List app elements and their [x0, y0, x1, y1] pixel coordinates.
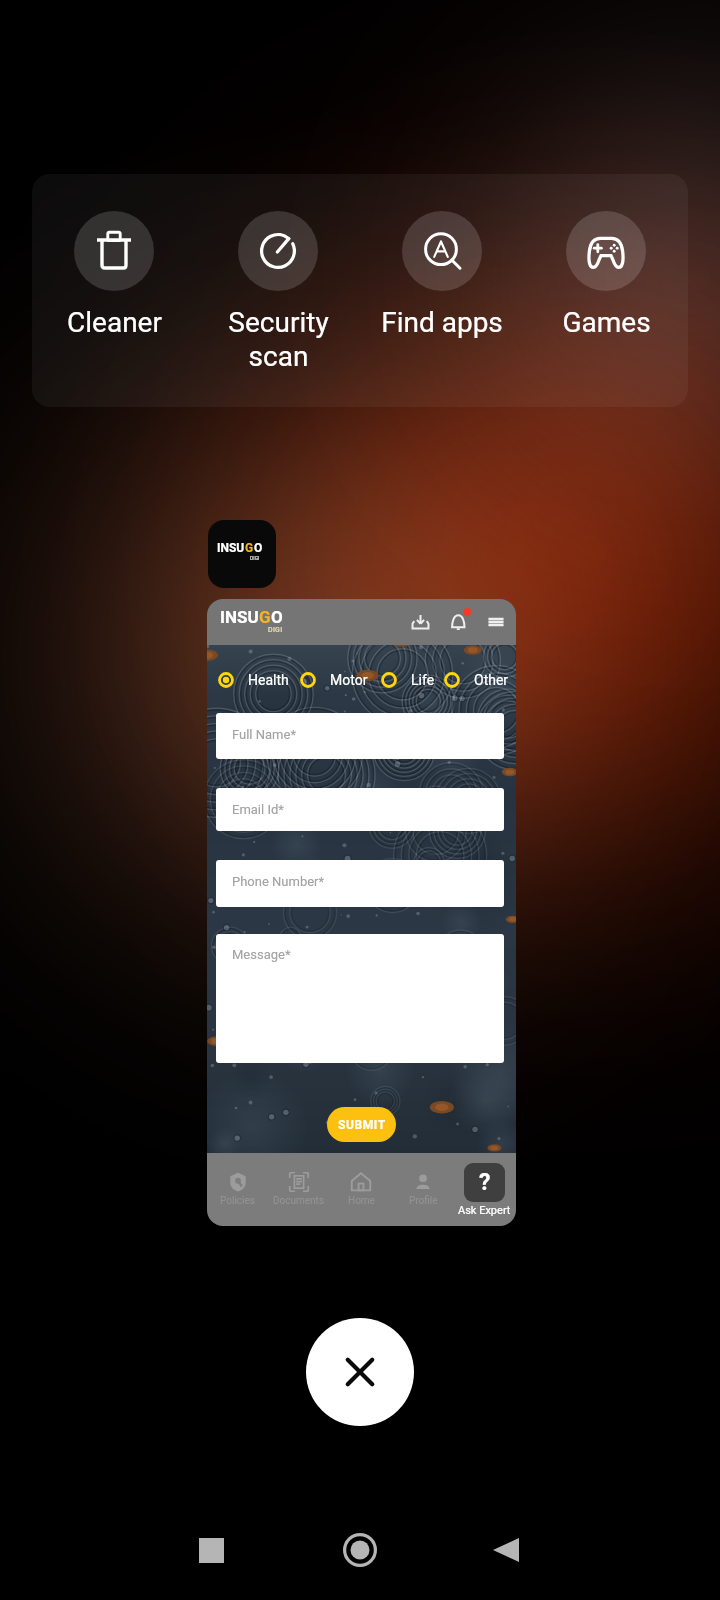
button[interactable]: Life	[381, 672, 435, 688]
staticText: O	[271, 607, 283, 627]
staticText: Games	[562, 306, 651, 339]
staticText: DIGI	[268, 626, 283, 634]
button[interactable]: Menu	[487, 613, 505, 631]
staticText: Other	[474, 672, 509, 688]
button[interactable]: INSU	[207, 599, 516, 1226]
button[interactable]: ?	[458, 1163, 511, 1217]
staticText: ?	[479, 1169, 491, 1196]
button[interactable]: Policies	[207, 1171, 268, 1207]
button[interactable]: SUBMIT	[327, 1107, 396, 1142]
staticText: G	[259, 607, 271, 627]
staticText: Motor	[330, 672, 368, 688]
staticText: Documents	[273, 1195, 325, 1207]
button[interactable]: Find apps	[360, 174, 524, 339]
staticText: SUBMIT	[338, 1118, 386, 1132]
staticText: Security scan	[228, 306, 329, 373]
staticText: Find apps	[381, 306, 503, 339]
button[interactable]: Close all	[306, 1318, 414, 1426]
button[interactable]: Security scan	[196, 174, 360, 373]
button[interactable]: INSU	[208, 520, 276, 588]
staticText: DIGI	[250, 555, 260, 561]
button[interactable]: Home	[330, 1171, 392, 1207]
button[interactable]: Profile	[392, 1171, 454, 1207]
staticText: Cleaner	[67, 306, 162, 339]
button[interactable]: Download	[410, 611, 431, 633]
button[interactable]: Games	[524, 174, 688, 339]
staticText: Message*	[232, 947, 291, 962]
button[interactable]: Full Name*	[216, 713, 504, 759]
button[interactable]: Cleaner	[32, 174, 196, 339]
button[interactable]: Motor	[300, 672, 368, 688]
button[interactable]: Notifications	[446, 609, 473, 635]
staticText: Health	[248, 672, 289, 688]
staticText: Profile	[409, 1195, 438, 1207]
button[interactable]: Recents	[161, 1500, 261, 1600]
button[interactable]: Phone Number*	[216, 860, 504, 907]
staticText: Home	[348, 1195, 375, 1207]
staticText: Phone Number*	[232, 874, 325, 889]
staticText: Ask Expert	[458, 1204, 511, 1217]
staticText: G	[245, 541, 254, 555]
button[interactable]: Home	[310, 1500, 410, 1600]
button[interactable]: Email Id*	[216, 788, 504, 831]
button[interactable]: Message*	[216, 934, 504, 1063]
staticText: INSU	[217, 541, 245, 555]
button[interactable]: Back	[456, 1500, 556, 1600]
staticText: Life	[411, 672, 435, 688]
button[interactable]: Health	[218, 672, 289, 688]
staticText: Email Id*	[232, 802, 284, 817]
staticText: Full Name*	[232, 727, 296, 742]
staticText: INSU	[220, 607, 259, 627]
button[interactable]: Other	[444, 672, 509, 688]
staticText: Policies	[220, 1195, 255, 1207]
button[interactable]: Documents	[268, 1171, 330, 1207]
staticText: O	[254, 541, 263, 555]
